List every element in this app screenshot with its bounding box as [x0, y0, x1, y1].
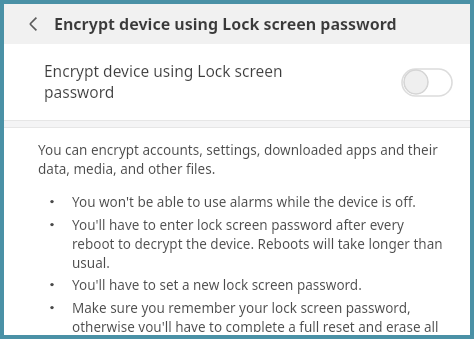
staticText: Encrypt device using Lock screen passwor… [54, 13, 397, 35]
button[interactable]: Encrypt device using Lock screen passwor… [4, 44, 470, 120]
staticText: You'll have to enter lock screen passwor… [72, 215, 443, 272]
staticText: Make sure you remember your lock screen … [72, 298, 439, 332]
staticText: You'll have to set a new lock screen pas… [72, 275, 362, 294]
button[interactable]: Encrypt device toggle, off [402, 67, 452, 97]
staticText: You won't be able to use alarms while th… [72, 192, 416, 211]
staticText: You can encrypt accounts, settings, down… [38, 140, 438, 178]
button[interactable]: Navigate up [18, 8, 50, 40]
staticText: Encrypt device using Lock screen passwor… [44, 61, 283, 103]
